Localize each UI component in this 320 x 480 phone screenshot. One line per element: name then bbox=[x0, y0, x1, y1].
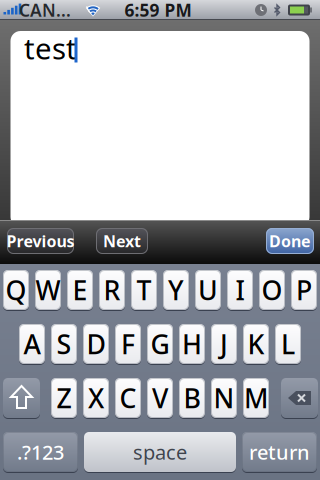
staticText: L bbox=[281, 326, 295, 362]
button[interactable]: G bbox=[147, 323, 173, 365]
staticText: return bbox=[249, 439, 310, 465]
staticText: U bbox=[198, 272, 218, 308]
button[interactable]: Text field: test bbox=[10, 31, 309, 227]
button[interactable]: C bbox=[115, 377, 141, 419]
staticText: B bbox=[183, 380, 200, 416]
button[interactable]: Q bbox=[3, 269, 29, 311]
button[interactable]: I bbox=[227, 269, 253, 311]
staticText: R bbox=[103, 272, 120, 308]
staticText: T bbox=[136, 272, 151, 308]
staticText: Next bbox=[103, 230, 141, 252]
staticText: .?123 bbox=[17, 439, 64, 465]
staticText: S bbox=[56, 326, 71, 362]
button[interactable]: R bbox=[99, 269, 125, 311]
button[interactable]: D bbox=[83, 323, 109, 365]
staticText: M bbox=[244, 380, 268, 416]
staticText: V bbox=[152, 380, 168, 416]
staticText: H bbox=[182, 326, 202, 362]
button[interactable]: H bbox=[179, 323, 205, 365]
button[interactable]: A bbox=[19, 323, 45, 365]
staticText: Y bbox=[168, 272, 184, 308]
staticText: P bbox=[296, 272, 312, 308]
staticText: K bbox=[247, 326, 264, 362]
button[interactable]: Y bbox=[163, 269, 189, 311]
button[interactable]: T bbox=[131, 269, 157, 311]
staticText: 6:59 PM bbox=[124, 0, 191, 21]
staticText: CAN... bbox=[19, 0, 71, 21]
staticText: Q bbox=[5, 272, 26, 308]
button[interactable]: X bbox=[83, 377, 109, 419]
staticText: E bbox=[72, 272, 87, 308]
button[interactable]: F bbox=[115, 323, 141, 365]
button[interactable]: space bbox=[84, 431, 236, 473]
staticText: W bbox=[35, 272, 60, 308]
staticText: Z bbox=[56, 380, 71, 416]
staticText: Done bbox=[269, 230, 311, 252]
button[interactable]: .?123 bbox=[3, 431, 78, 473]
button[interactable]: K bbox=[243, 323, 269, 365]
staticText: space bbox=[133, 439, 187, 465]
button[interactable]: S bbox=[51, 323, 77, 365]
button[interactable]: V bbox=[147, 377, 173, 419]
button[interactable]: L bbox=[275, 323, 301, 365]
button[interactable]: W bbox=[35, 269, 61, 311]
button[interactable]: Done bbox=[266, 228, 314, 254]
button[interactable]: Next bbox=[96, 228, 148, 254]
button[interactable]: Shift bbox=[3, 377, 40, 419]
button[interactable]: O bbox=[259, 269, 285, 311]
staticText: G bbox=[150, 326, 169, 362]
button[interactable]: M bbox=[243, 377, 269, 419]
button[interactable]: U bbox=[195, 269, 221, 311]
button[interactable]: return bbox=[242, 431, 317, 473]
staticText: Previous bbox=[6, 230, 74, 252]
staticText: A bbox=[23, 326, 40, 362]
staticText: C bbox=[119, 380, 136, 416]
button[interactable]: Previous bbox=[7, 228, 74, 254]
button[interactable]: B bbox=[179, 377, 205, 419]
button[interactable]: Z bbox=[51, 377, 77, 419]
button[interactable]: Delete bbox=[281, 377, 318, 419]
staticText: D bbox=[86, 326, 105, 362]
button[interactable]: J bbox=[211, 323, 237, 365]
staticText: test bbox=[24, 28, 77, 67]
button[interactable]: N bbox=[211, 377, 237, 419]
staticText: X bbox=[88, 380, 104, 416]
staticText: F bbox=[121, 326, 135, 362]
button[interactable]: P bbox=[291, 269, 317, 311]
staticText: I bbox=[235, 272, 244, 308]
staticText: N bbox=[213, 380, 234, 416]
button[interactable]: E bbox=[67, 269, 93, 311]
staticText: O bbox=[261, 272, 282, 308]
staticText: J bbox=[220, 326, 228, 362]
